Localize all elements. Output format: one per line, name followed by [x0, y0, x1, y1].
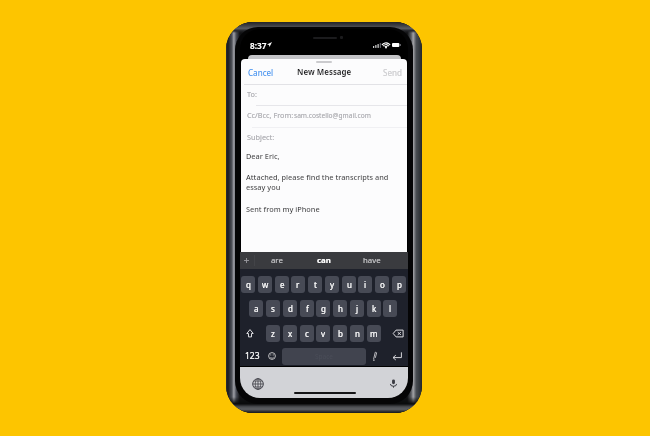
button[interactable]: f — [300, 300, 314, 317]
button[interactable]: a — [249, 300, 263, 317]
staticText: l — [389, 303, 392, 314]
staticText: g — [321, 303, 326, 314]
staticText: To: — [247, 89, 257, 99]
button[interactable]: k — [367, 300, 381, 317]
staticText: have — [363, 255, 381, 266]
button[interactable]: j — [350, 300, 364, 317]
staticText: f — [306, 303, 309, 314]
button[interactable]: s — [266, 300, 280, 317]
staticText: Attached, please find the transcripts an… — [246, 172, 389, 182]
button[interactable]: Backspace — [390, 325, 406, 342]
staticText: Send — [383, 67, 402, 78]
staticText: New Message — [297, 67, 352, 78]
button[interactable]: Add — [241, 255, 252, 266]
button[interactable]: v — [316, 325, 330, 342]
button[interactable]: o — [375, 276, 389, 293]
button[interactable]: d — [283, 300, 297, 317]
staticText: n — [355, 328, 360, 339]
button[interactable]: i — [358, 276, 372, 293]
staticText: r — [296, 279, 300, 290]
button[interactable]: Change keyboard — [250, 376, 265, 391]
staticText: v — [321, 328, 326, 339]
staticText: essay you — [246, 182, 281, 192]
staticText: q — [246, 279, 251, 290]
staticText: can — [317, 255, 331, 266]
button[interactable]: c — [300, 325, 314, 342]
button[interactable]: Subject: — [241, 128, 407, 146]
staticText: are — [271, 255, 283, 266]
staticText: t — [314, 279, 317, 290]
staticText: p — [397, 279, 402, 290]
staticText: sam.costello@gmail.com — [294, 111, 371, 120]
staticText: b — [338, 328, 343, 339]
button[interactable]: Dictate — [386, 376, 401, 391]
staticText: m — [370, 328, 378, 339]
staticText: y — [330, 279, 335, 290]
button[interactable]: x — [283, 325, 297, 342]
button[interactable]: 123 — [242, 348, 263, 364]
staticText: h — [338, 303, 343, 314]
button[interactable]: To: — [241, 85, 407, 103]
staticText: 123 — [245, 350, 260, 362]
button[interactable]: Emoji — [265, 348, 279, 364]
button[interactable]: n — [350, 325, 364, 342]
button[interactable]: m — [367, 325, 381, 342]
button[interactable]: Send — [379, 65, 406, 80]
staticText: i — [364, 279, 367, 290]
button[interactable]: g — [316, 300, 330, 317]
button[interactable]: z — [266, 325, 280, 342]
button[interactable]: u — [342, 276, 356, 293]
button[interactable]: can — [306, 252, 342, 269]
button[interactable]: l — [383, 300, 397, 317]
button[interactable]: b — [333, 325, 347, 342]
button[interactable]: t — [308, 276, 322, 293]
staticText: Dear Eric, — [246, 151, 280, 161]
staticText: Cancel — [248, 67, 274, 78]
staticText: x — [288, 328, 293, 339]
staticText: w — [262, 279, 269, 290]
button[interactable]: Cc/Bcc, From: — [241, 106, 407, 124]
button[interactable]: Handwriting — [368, 348, 382, 364]
staticText: u — [347, 279, 352, 290]
button[interactable]: w — [258, 276, 272, 293]
staticText: s — [271, 303, 275, 314]
staticText: e — [280, 279, 285, 290]
button[interactable]: Shift — [242, 325, 258, 342]
staticText: o — [380, 279, 385, 290]
button[interactable]: are — [259, 252, 295, 269]
button[interactable]: r — [291, 276, 305, 293]
staticText: c — [305, 328, 309, 339]
staticText: k — [372, 303, 377, 314]
button[interactable]: q — [241, 276, 255, 293]
staticText: j — [356, 303, 359, 314]
button[interactable]: e — [275, 276, 289, 293]
button[interactable]: p — [392, 276, 406, 293]
staticText: z — [271, 328, 275, 339]
button[interactable]: Cancel — [246, 65, 276, 80]
staticText: d — [288, 303, 293, 314]
button[interactable]: Return — [387, 348, 407, 364]
staticText: Sent from my iPhone — [246, 204, 320, 214]
button[interactable]: h — [333, 300, 347, 317]
staticText: Cc/Bcc, From: — [247, 110, 294, 120]
button[interactable]: have — [354, 252, 390, 269]
staticText: Subject: — [247, 132, 275, 142]
staticText: a — [254, 303, 259, 314]
button[interactable]: y — [325, 276, 339, 293]
staticText: 8:37 — [250, 40, 267, 51]
